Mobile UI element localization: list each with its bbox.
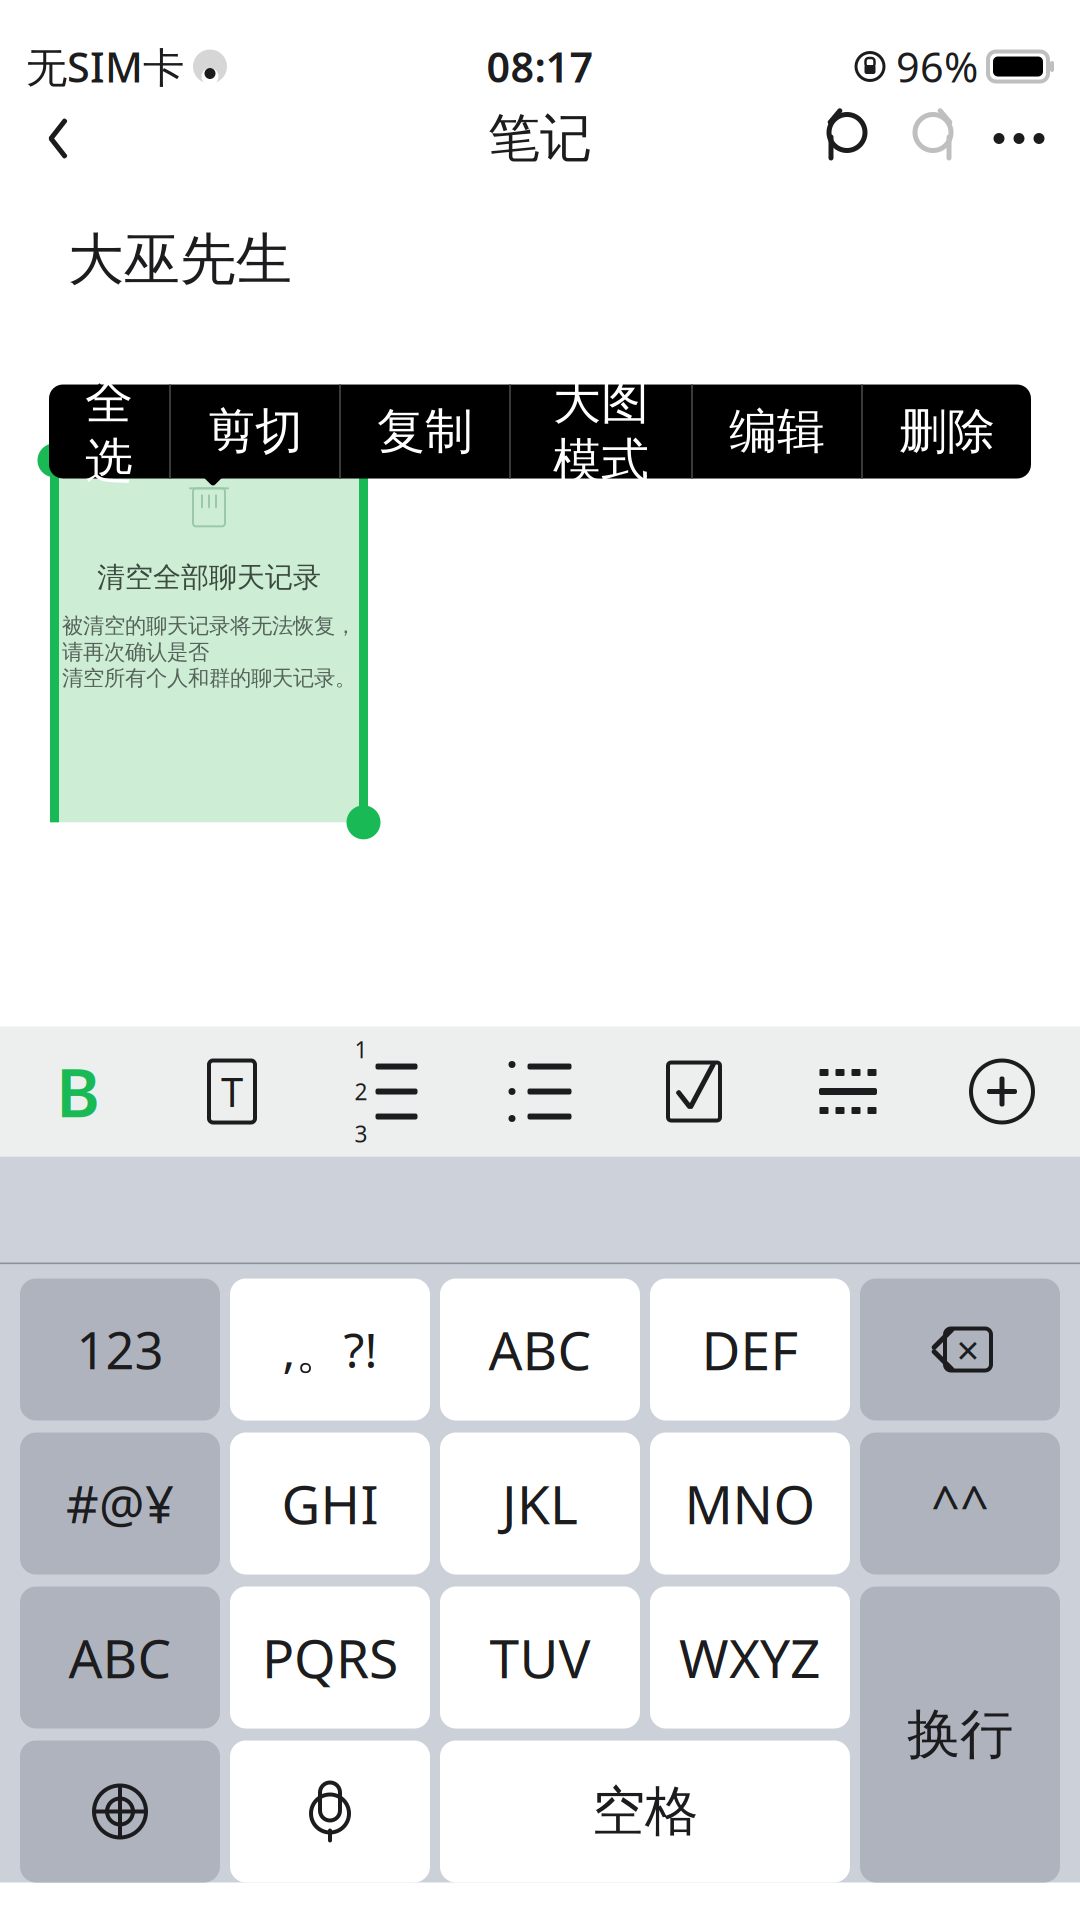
staticText: 被清空的聊天记录将无法恢复，请再次确认是否 [62,613,356,665]
staticText: ,。?! [282,1317,377,1381]
button[interactable]: PQRS [230,1586,430,1728]
button[interactable]: 文字样式 [184,1031,280,1151]
button[interactable]: 大图模式 [511,384,691,478]
staticText: 2 [354,1076,367,1106]
button[interactable]: 待办列表 [646,1031,742,1151]
button[interactable]: 语音输入 [230,1740,430,1882]
button[interactable]: 换行 [860,1586,1060,1882]
button[interactable]: GHI [230,1432,430,1574]
button[interactable]: 复制 [341,384,509,478]
button[interactable]: TUV [440,1586,640,1728]
staticText: ABC [488,1314,591,1385]
button[interactable]: 撤销 [804,95,890,181]
staticText: 剪切 [207,402,303,461]
button[interactable]: WXYZ [650,1586,850,1728]
staticText: 全选 [85,372,133,490]
staticText: ^^ [931,1470,989,1537]
button[interactable]: JKL [440,1432,640,1574]
button[interactable]: 加粗 [30,1031,126,1151]
button[interactable]: 剪切 [171,384,339,478]
button[interactable]: 删除 [863,384,1031,478]
button[interactable]: 返回 [18,95,98,181]
staticText: 这是一个加粗 [66,380,420,452]
staticText: B [56,1047,100,1136]
staticText: 1 [354,1034,367,1064]
button[interactable]: ABC [20,1586,220,1728]
staticText: 96% [896,39,978,94]
staticText: 123 [76,1316,163,1383]
button[interactable]: 123 [20,1278,220,1420]
staticText: 编辑 [729,402,825,461]
staticText: 大巫先生 [68,225,292,294]
button[interactable]: 空格 [440,1740,850,1882]
button[interactable]: 项目符号列表 [492,1031,588,1151]
button[interactable]: MNO [650,1432,850,1574]
button[interactable]: 切换键盘 [20,1740,220,1882]
button[interactable]: ^^ [860,1432,1060,1574]
button[interactable]: 全选 [49,384,169,478]
staticText: 空格 [592,1779,698,1844]
staticText: 复制 [377,402,473,461]
button[interactable]: 删除 [860,1278,1060,1420]
staticText: 08:17 [486,39,593,94]
staticText: PQRS [262,1622,398,1693]
button[interactable]: ,。?! [230,1278,430,1420]
staticText: 清空所有个人和群的聊天记录。 [62,665,356,691]
staticText: 大图模式 [553,372,649,490]
staticText: T [221,1065,243,1118]
staticText: ABC [68,1622,171,1693]
button[interactable]: 更多 [954,1031,1050,1151]
staticText: 换行 [907,1702,1013,1767]
staticText: 3 [354,1119,367,1149]
staticText: GHI [281,1468,378,1539]
button[interactable]: #@¥ [20,1432,220,1574]
button[interactable]: 更多 [976,95,1062,181]
staticText: #@¥ [66,1470,174,1537]
button[interactable]: ABC [440,1278,640,1420]
button[interactable]: 编号列表 [338,1031,434,1151]
button[interactable]: 重做 [890,95,976,181]
staticText: TUV [489,1622,590,1693]
staticText: JKL [502,1468,578,1539]
staticText: WXYZ [679,1622,821,1693]
staticText: 笔记 [488,107,592,170]
staticText: 删除 [899,402,995,461]
button[interactable]: 编辑 [693,384,861,478]
staticText: MNO [684,1468,815,1539]
staticText: 清空全部聊天记录 [97,560,321,595]
staticText: 无SIM卡 [26,39,184,94]
button[interactable]: DEF [650,1278,850,1420]
staticText: DEF [701,1314,798,1385]
button[interactable]: 分割线 [800,1031,896,1151]
staticText: × [956,1323,979,1376]
